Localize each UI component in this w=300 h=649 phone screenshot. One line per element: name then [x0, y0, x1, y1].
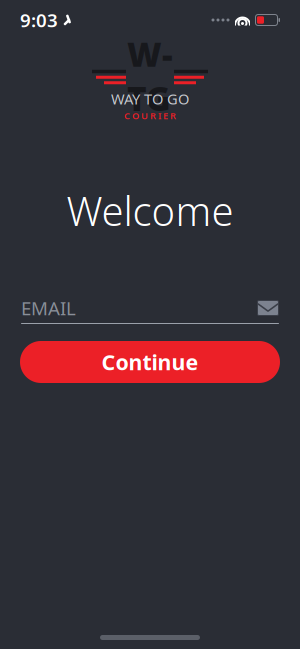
staticText: C O U R I E R [124, 109, 176, 122]
staticText: WAY TO GO [111, 89, 189, 108]
staticText: Continue [101, 348, 198, 376]
staticText: WTG [127, 32, 173, 120]
staticText: Welcome [66, 184, 233, 237]
staticText: EMAIL [21, 296, 76, 320]
staticText: 9:03 [20, 8, 58, 32]
button[interactable]: Continue [20, 341, 280, 383]
button[interactable]: Email [249, 300, 279, 316]
